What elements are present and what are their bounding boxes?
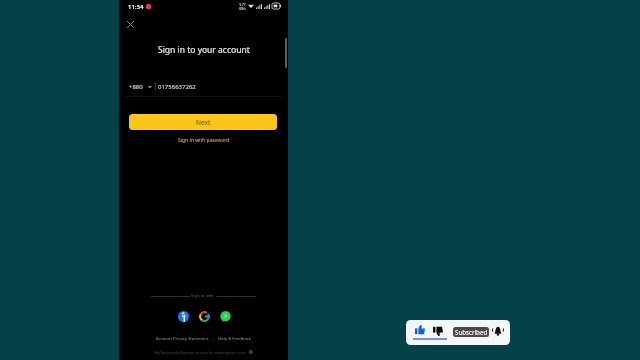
button[interactable]: Next	[129, 114, 277, 130]
staticText: 01756637262	[158, 83, 196, 91]
staticText: Sign in to your account	[158, 44, 250, 56]
button[interactable]: Dislike	[432, 325, 443, 336]
staticText: Next	[196, 118, 211, 127]
button[interactable]: Subscribed	[453, 327, 489, 337]
staticText: Subscribed	[455, 328, 488, 336]
staticText: 5.77 KB/s	[239, 3, 246, 10]
button[interactable]: Help & Feedback	[218, 336, 252, 342]
staticText: HeyTap provides Internet services for re…	[154, 350, 246, 355]
button[interactable]: Sign in with password	[174, 136, 234, 145]
staticText: 11:54	[128, 3, 144, 11]
staticText: +880	[129, 83, 143, 91]
button[interactable]: Sign in with Facebook	[177, 310, 189, 322]
staticText: |	[209, 336, 218, 342]
button[interactable]: Notifications	[492, 325, 503, 336]
button[interactable]: Sign in with Google	[198, 310, 210, 322]
button[interactable]: Account Privacy Statement	[156, 336, 209, 342]
button[interactable]: Like	[414, 324, 425, 335]
button[interactable]: Sign in with WhatsApp	[219, 310, 231, 322]
button[interactable]: Close	[122, 16, 139, 33]
staticText: Sign in with	[190, 293, 216, 299]
